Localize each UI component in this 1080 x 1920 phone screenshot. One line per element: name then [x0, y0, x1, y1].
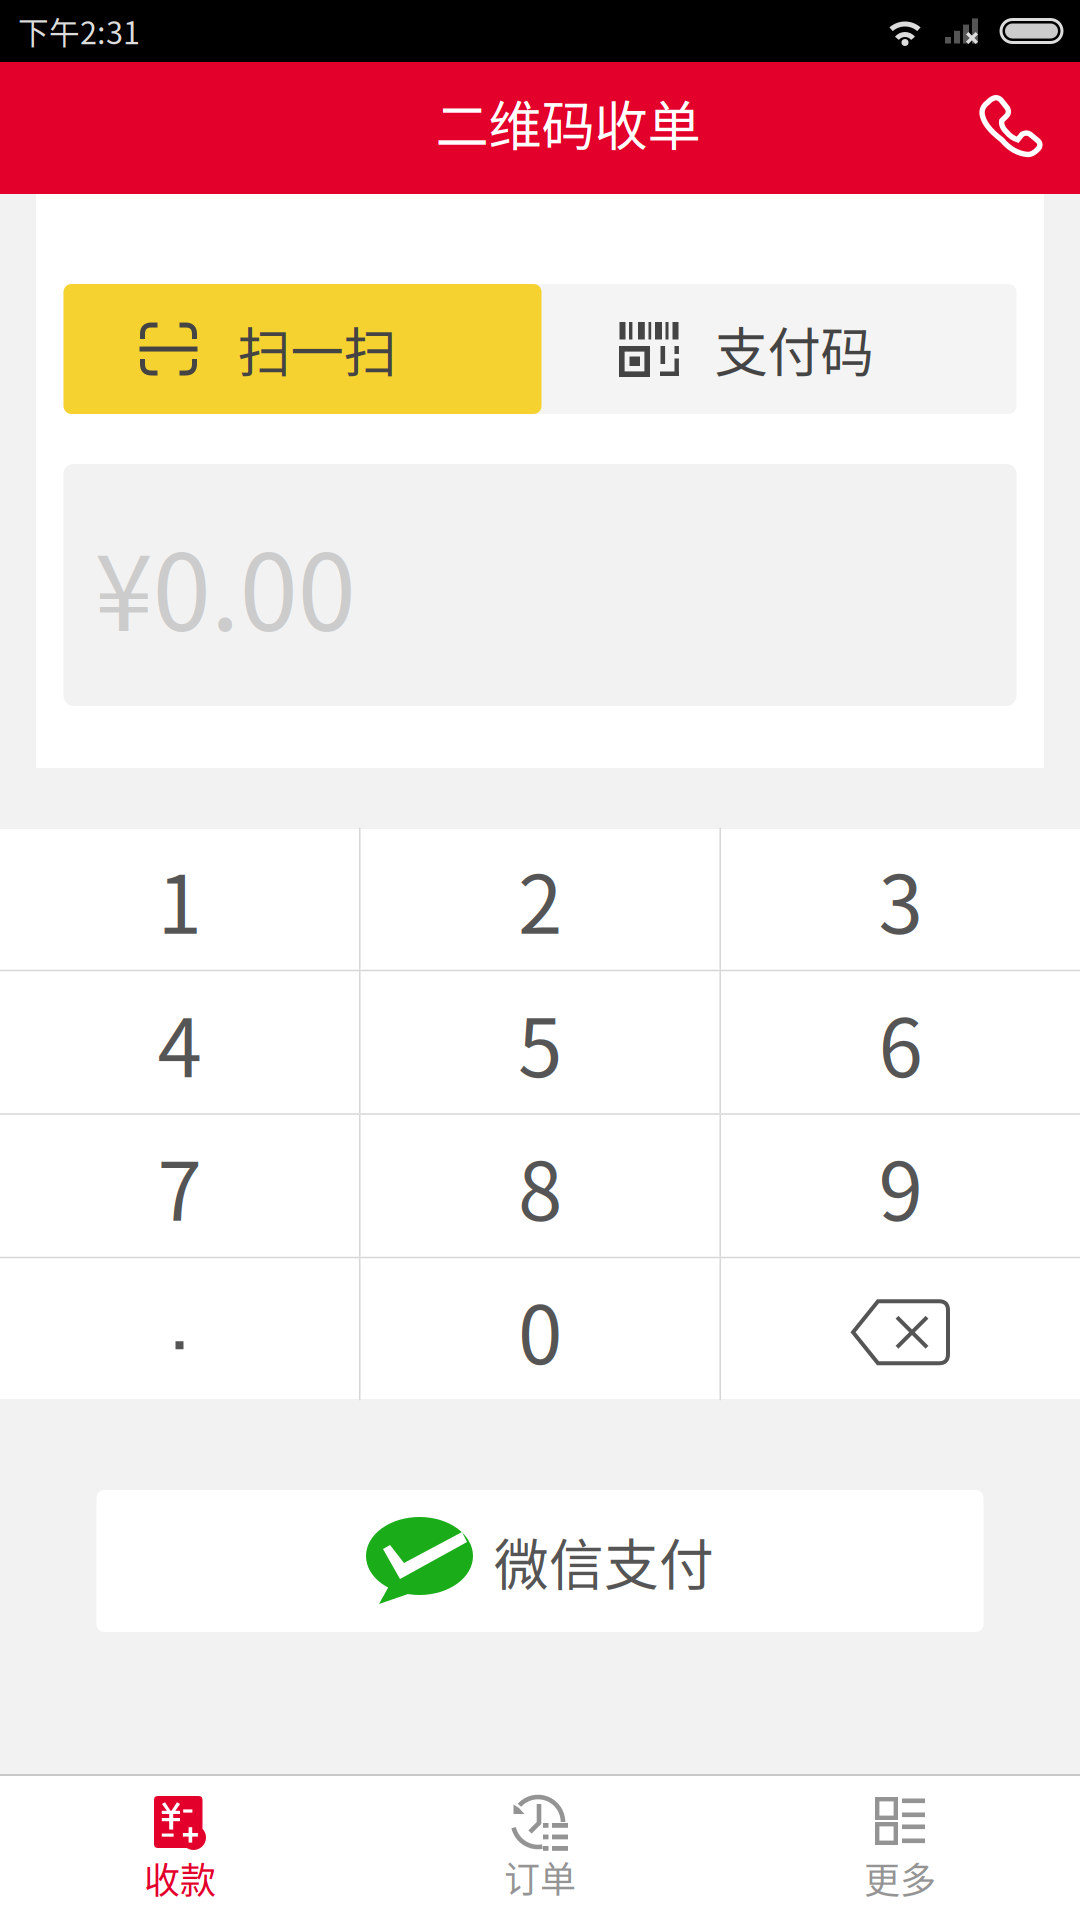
button[interactable]: 9 — [721, 1115, 1080, 1257]
button[interactable]: 4 — [0, 971, 359, 1113]
staticText: 下午2:31 — [18, 9, 140, 53]
staticText: 9 — [878, 1128, 922, 1244]
button[interactable]: 5 — [360, 971, 719, 1113]
button[interactable]: 6 — [721, 971, 1080, 1113]
button[interactable]: 删除 — [721, 1258, 1080, 1400]
staticText: 7 — [157, 1128, 201, 1244]
staticText: 6 — [878, 984, 922, 1100]
staticText: 8 — [518, 1128, 562, 1244]
staticText: 支付码 — [714, 310, 873, 388]
staticText: 订单 — [504, 1851, 576, 1903]
staticText: 5 — [518, 984, 562, 1100]
button[interactable]: 扫一扫 — [63, 284, 541, 414]
button[interactable]: 小数点 — [0, 1258, 359, 1400]
staticText: 2 — [518, 841, 562, 957]
button[interactable]: 微信支付 — [96, 1490, 983, 1632]
button[interactable]: 3 — [721, 828, 1080, 970]
staticText: 更多 — [864, 1852, 936, 1904]
staticText: 收款 — [144, 1852, 216, 1904]
staticText: 1 — [157, 841, 201, 957]
staticText: 0 — [518, 1271, 562, 1387]
button[interactable]: 8 — [360, 1115, 719, 1257]
staticText: 二维码收单 — [435, 84, 700, 161]
button[interactable]: 更多 — [720, 1775, 1080, 1920]
button[interactable]: 1 — [0, 828, 359, 970]
button[interactable]: 支付码 — [541, 284, 1016, 414]
button[interactable]: 2 — [360, 828, 719, 970]
button[interactable]: 拨打电话 — [944, 62, 1080, 194]
staticText: 扫一扫 — [237, 310, 396, 388]
button[interactable]: 0 — [360, 1258, 719, 1400]
button[interactable]: 收款 — [0, 1775, 360, 1920]
staticText: 微信支付 — [494, 1521, 714, 1601]
button[interactable]: 订单 — [360, 1775, 720, 1920]
staticText: 4 — [157, 984, 201, 1100]
staticText: 3 — [878, 841, 922, 957]
staticText: ¥0.00 — [94, 509, 355, 661]
button[interactable]: 7 — [0, 1115, 359, 1257]
